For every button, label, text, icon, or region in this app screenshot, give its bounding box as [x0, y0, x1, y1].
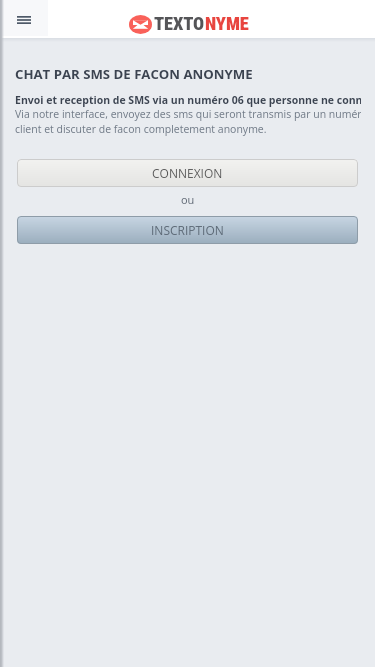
staticText: Envoi et reception de SMS via un numéro … — [15, 93, 361, 107]
staticText: TEXTO — [154, 13, 205, 35]
staticText: NYME — [205, 13, 249, 35]
staticText: CHAT PAR SMS DE FACON ANONYME — [15, 65, 253, 83]
button[interactable]: CONNEXION — [17, 159, 358, 187]
staticText: Via notre interface, envoyez des sms qui… — [15, 107, 361, 136]
button[interactable]: INSCRIPTION — [17, 216, 358, 244]
staticText: INSCRIPTION — [151, 222, 224, 238]
staticText: CONNEXION — [152, 165, 223, 181]
staticText: ou — [181, 192, 195, 207]
button[interactable]: Open navigation menu — [2, 0, 48, 36]
